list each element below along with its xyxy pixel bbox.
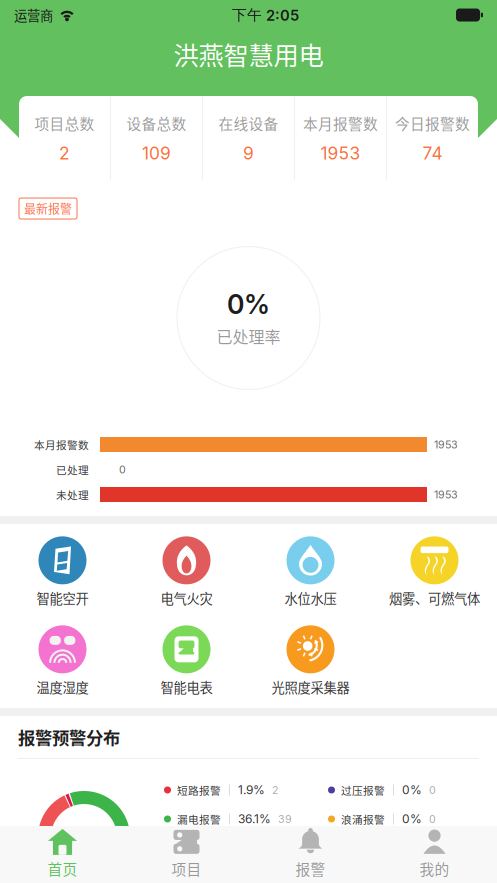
staticText: 报警预警分布 [18,724,120,750]
staticText: 智能空开 [36,588,88,608]
button[interactable]: 光照度采集器 [248,625,372,697]
staticText: 2 [272,783,279,796]
staticText: 项目 [171,858,201,879]
staticText: 下午 2:05 [232,6,299,24]
staticText: 36.1% [238,812,271,826]
staticText: 洪燕智慧用电 [173,36,323,72]
button[interactable]: 水位水压 [248,536,372,608]
staticText: 已处理 [56,462,89,477]
staticText: 水位水压 [284,588,336,608]
staticText: 39 [278,812,292,825]
staticText: 电气火灾 [160,588,212,608]
button[interactable]: 在线设备 [203,96,294,180]
staticText: 1953 [434,438,458,451]
button[interactable]: 报警 [248,826,372,882]
staticText: 0% [402,812,422,826]
staticText: 0 [429,812,436,825]
staticText: 74 [422,143,442,164]
staticText: 未处理 [56,487,89,502]
staticText: 过压报警 [341,782,385,798]
staticText: 9 [243,143,254,164]
staticText: 漏电报警 [177,811,221,827]
staticText: 0 [429,783,436,796]
staticText: 短路报警 [177,782,221,798]
staticText: 0% [227,288,270,321]
staticText: 今日报警数 [395,112,470,134]
staticText: 1953 [320,143,360,164]
button[interactable]: 温度湿度 [0,625,124,697]
staticText: 我的 [419,858,449,879]
staticText: 烟雾、可燃气体 [389,588,480,608]
button[interactable]: 最新报警 [19,198,77,219]
button[interactable]: 首页 [0,826,124,882]
staticText: 2 [59,143,70,164]
staticText: 本月报警数 [34,437,89,452]
staticText: 光照度采集器 [271,677,349,697]
staticText: 设备总数 [126,112,186,134]
staticText: 报警 [295,858,325,879]
button[interactable]: 设备总数 [111,96,202,180]
button[interactable]: 我的 [372,826,496,882]
staticText: 温度湿度 [36,677,88,697]
staticText: 智能电表 [160,677,212,697]
button[interactable]: 智能电表 [124,625,248,697]
staticText: 0 [119,463,126,476]
staticText: 109 [142,143,171,164]
button[interactable]: 项目 [124,826,248,882]
button[interactable]: 今日报警数 [387,96,478,180]
staticText: 1.9% [238,783,265,797]
staticText: 浪涌报警 [341,811,385,827]
staticText: 1953 [434,488,458,501]
staticText: 首页 [47,858,77,879]
button[interactable]: 项目总数 [19,96,110,180]
staticText: 本月报警数 [303,112,378,134]
button[interactable]: 智能空开 [0,536,124,608]
button[interactable]: 烟雾、可燃气体 [372,536,496,608]
staticText: 0% [402,783,422,797]
staticText: 在线设备 [218,112,278,134]
staticText: 最新报警 [24,200,72,217]
button[interactable]: 本月报警数 [295,96,386,180]
staticText: 运营商 [14,5,53,25]
staticText: 已处理率 [216,324,280,348]
button[interactable]: 电气火灾 [124,536,248,608]
staticText: 项目总数 [34,112,94,134]
